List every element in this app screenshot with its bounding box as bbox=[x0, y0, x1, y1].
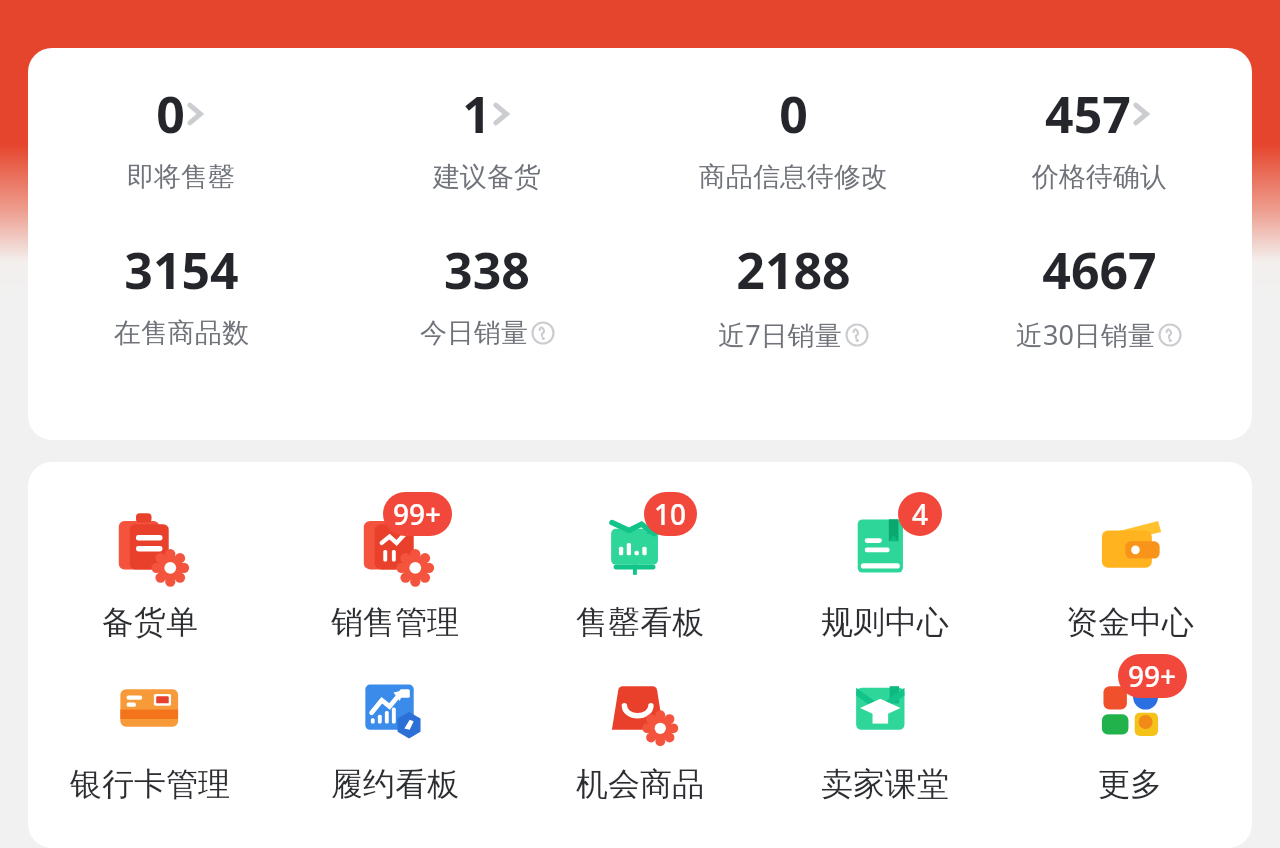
staticText: 近30日销量 bbox=[1016, 316, 1155, 353]
staticText: 备货单 bbox=[102, 602, 198, 642]
staticText: 99+ bbox=[393, 495, 442, 533]
staticText: 卖家课堂 bbox=[821, 764, 949, 804]
button[interactable]: 2188 bbox=[640, 236, 946, 353]
button[interactable]: 银行卡管理 bbox=[28, 656, 272, 804]
button[interactable]: 售罄看板 bbox=[517, 494, 762, 642]
staticText: 在售商品数 bbox=[114, 316, 249, 350]
button[interactable]: 规则中心 bbox=[762, 494, 1007, 642]
button[interactable]: 0 bbox=[640, 80, 946, 194]
button[interactable]: 备货单 bbox=[28, 494, 272, 642]
staticText: 4 bbox=[912, 495, 929, 533]
staticText: 规则中心 bbox=[821, 602, 949, 642]
button[interactable]: 457 bbox=[946, 80, 1252, 194]
button[interactable]: 3154 bbox=[28, 236, 334, 350]
button[interactable]: 资金中心 bbox=[1007, 494, 1252, 642]
staticText: 履约看板 bbox=[331, 764, 459, 804]
staticText: 99+ bbox=[1128, 657, 1177, 695]
button[interactable]: 更多 bbox=[1007, 656, 1252, 804]
button[interactable]: 4667 bbox=[946, 236, 1252, 353]
button[interactable]: 机会商品 bbox=[517, 656, 762, 804]
staticText: 3154 bbox=[124, 236, 239, 304]
button[interactable]: 1 bbox=[334, 80, 640, 194]
button[interactable]: 销售管理 bbox=[272, 494, 517, 642]
staticText: 4667 bbox=[1042, 236, 1157, 304]
staticText: 1 bbox=[462, 80, 491, 148]
staticText: 近7日销量 bbox=[718, 316, 842, 353]
staticText: 商品信息待修改 bbox=[699, 160, 888, 194]
staticText: 今日销量 bbox=[420, 316, 528, 350]
staticText: 建议备货 bbox=[433, 160, 541, 194]
staticText: 即将售罄 bbox=[127, 160, 235, 194]
button[interactable]: 卖家课堂 bbox=[762, 656, 1007, 804]
staticText: 0 bbox=[779, 80, 808, 148]
staticText: 2188 bbox=[736, 236, 851, 304]
staticText: 售罄看板 bbox=[576, 602, 704, 642]
staticText: 价格待确认 bbox=[1032, 160, 1167, 194]
button[interactable]: 0 bbox=[28, 80, 334, 194]
button[interactable]: 338 bbox=[334, 236, 640, 350]
staticText: 资金中心 bbox=[1066, 602, 1194, 642]
staticText: 0 bbox=[156, 80, 185, 148]
staticText: 机会商品 bbox=[576, 764, 704, 804]
staticText: 457 bbox=[1045, 80, 1131, 148]
staticText: 销售管理 bbox=[331, 602, 459, 642]
staticText: 银行卡管理 bbox=[70, 764, 230, 804]
staticText: 10 bbox=[654, 495, 687, 533]
staticText: 338 bbox=[444, 236, 530, 304]
button[interactable]: 履约看板 bbox=[272, 656, 517, 804]
staticText: 更多 bbox=[1098, 764, 1162, 804]
